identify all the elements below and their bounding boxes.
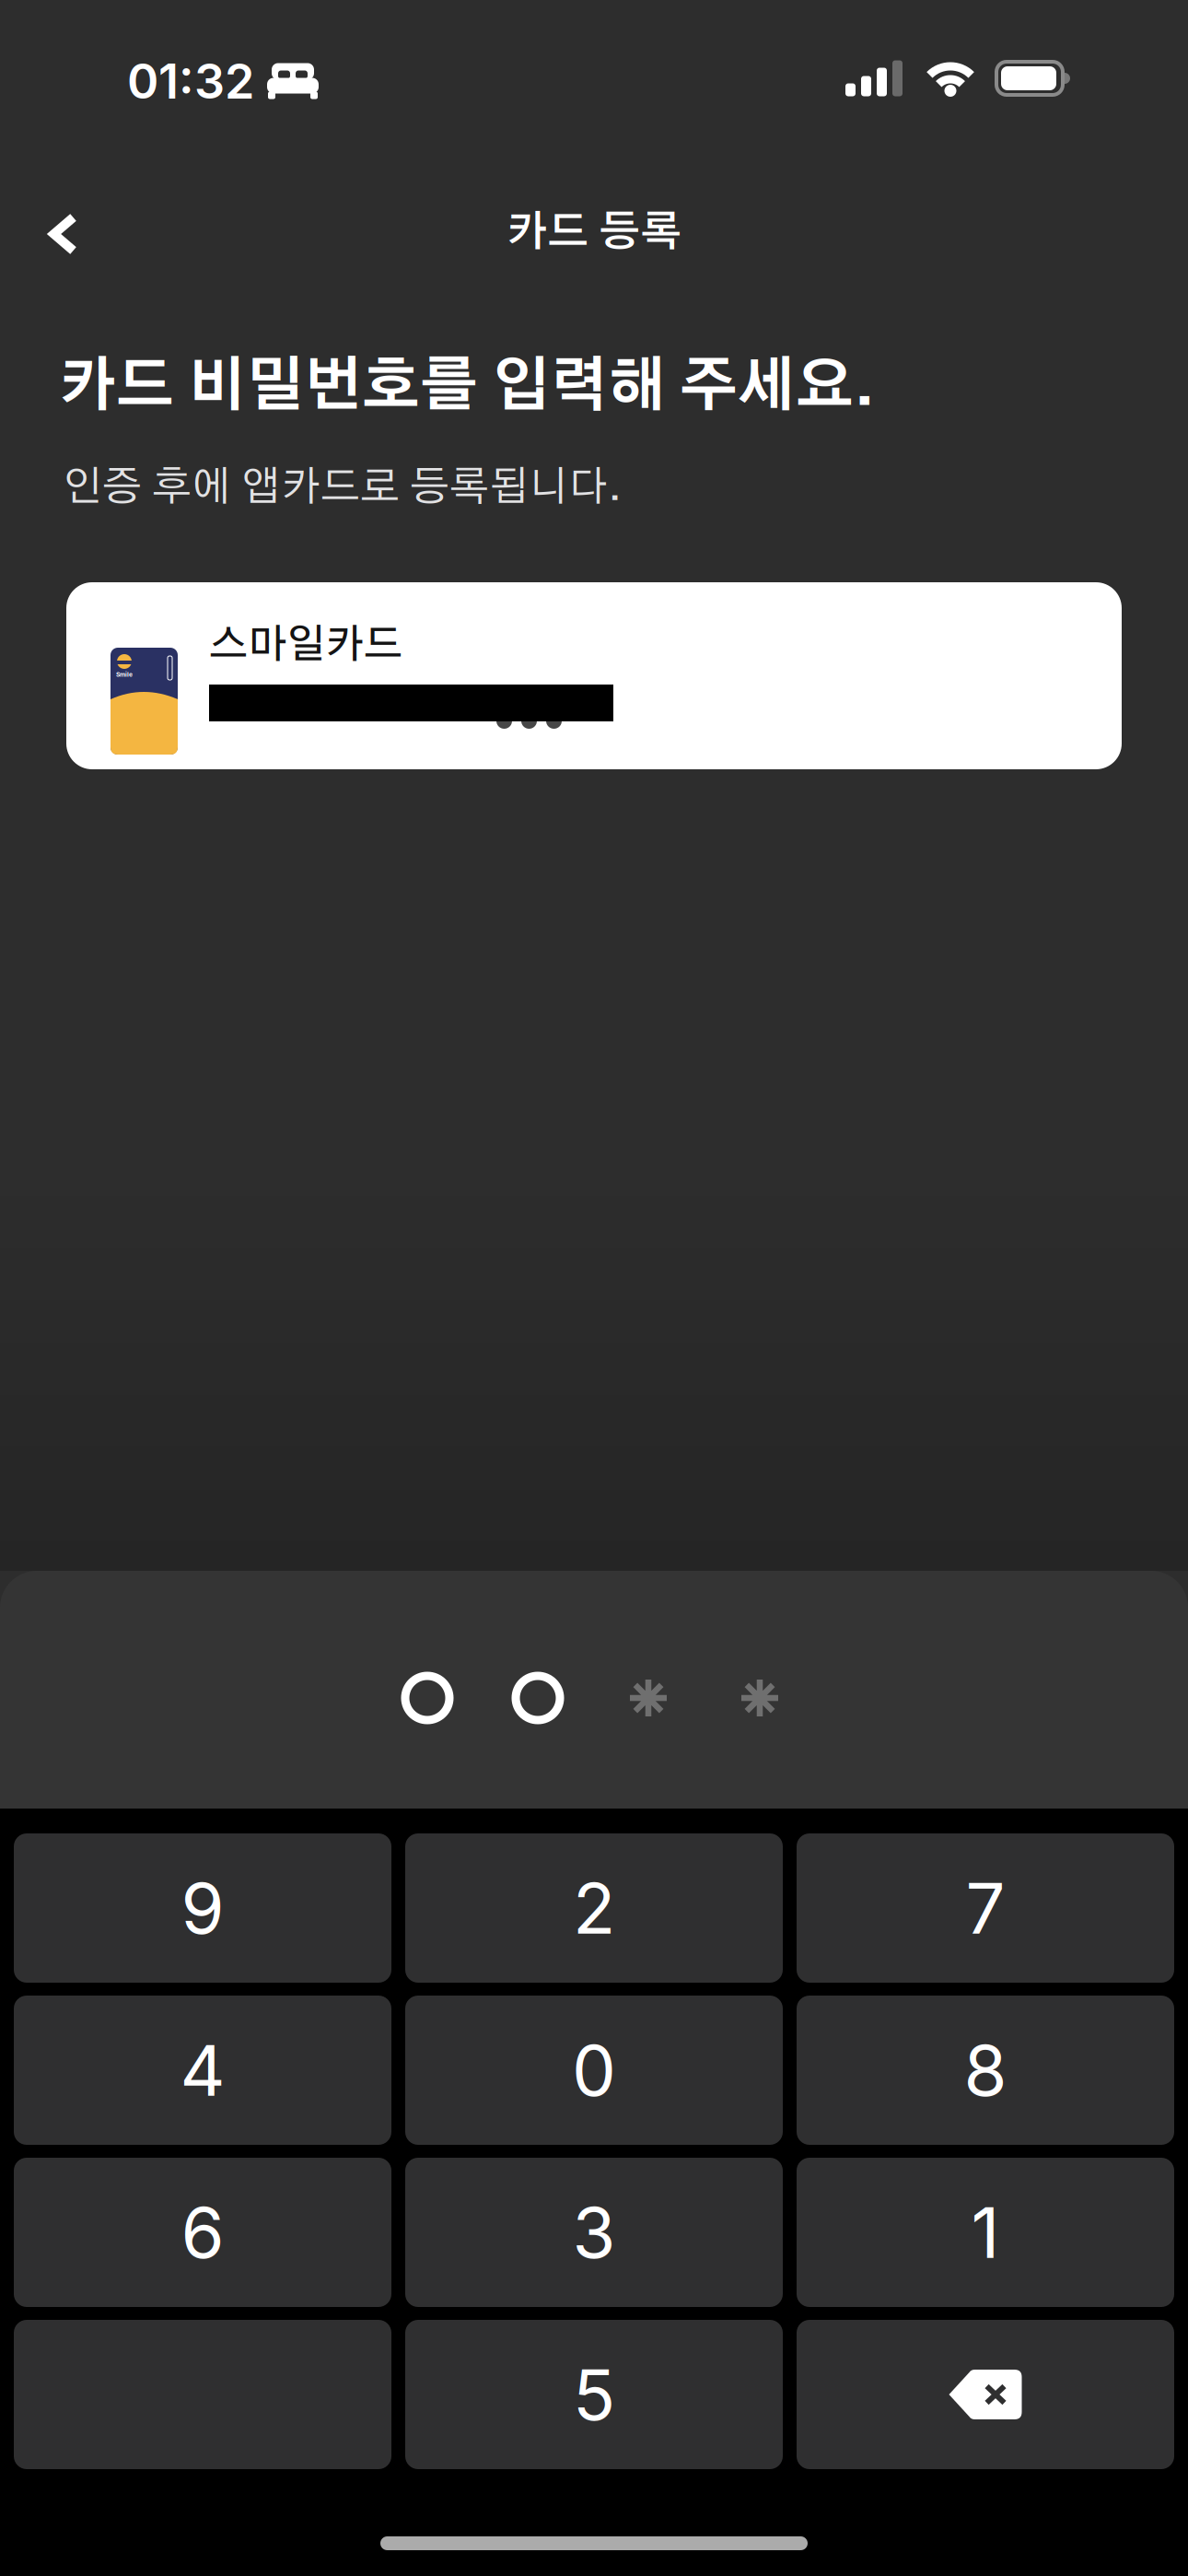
button[interactable]: 8 (797, 1996, 1174, 2145)
staticText: 카드 등록 (506, 212, 682, 254)
staticText: 7 (966, 1866, 1005, 1950)
staticText: 6 (181, 2190, 224, 2275)
staticText: 9 (181, 1866, 224, 1950)
button[interactable]: 6 (14, 2158, 391, 2307)
staticText: 2 (573, 1866, 615, 1950)
staticText: Smile (116, 671, 133, 678)
staticText: 스마일카드 (209, 626, 402, 665)
staticText: 카드 비밀번호를 입력해 주세요. (58, 358, 875, 417)
button[interactable]: 5 (405, 2320, 783, 2469)
staticText: 8 (964, 2028, 1007, 2113)
button[interactable]: 7 (797, 1833, 1174, 1983)
staticText: 1 (971, 2190, 1000, 2275)
button[interactable]: 0 (405, 1996, 783, 2145)
button[interactable]: 뒤로 (31, 202, 96, 266)
button[interactable]: 4 (14, 1996, 391, 2145)
staticText: 0 (572, 2028, 616, 2113)
button[interactable]: 2 (405, 1833, 783, 1983)
staticText: 3 (572, 2190, 616, 2275)
button[interactable]: 삭제 (797, 2320, 1174, 2469)
button[interactable]: Smile (66, 582, 1122, 769)
staticText: 인증 후에 앱카드로 등록됩니다. (63, 467, 622, 508)
button[interactable]: 3 (405, 2158, 783, 2307)
button[interactable]: 1 (797, 2158, 1174, 2307)
button[interactable]: 9 (14, 1833, 391, 1983)
staticText: 5 (573, 2352, 615, 2437)
staticText: 01:32 (127, 52, 254, 110)
staticText: 4 (180, 2028, 225, 2113)
